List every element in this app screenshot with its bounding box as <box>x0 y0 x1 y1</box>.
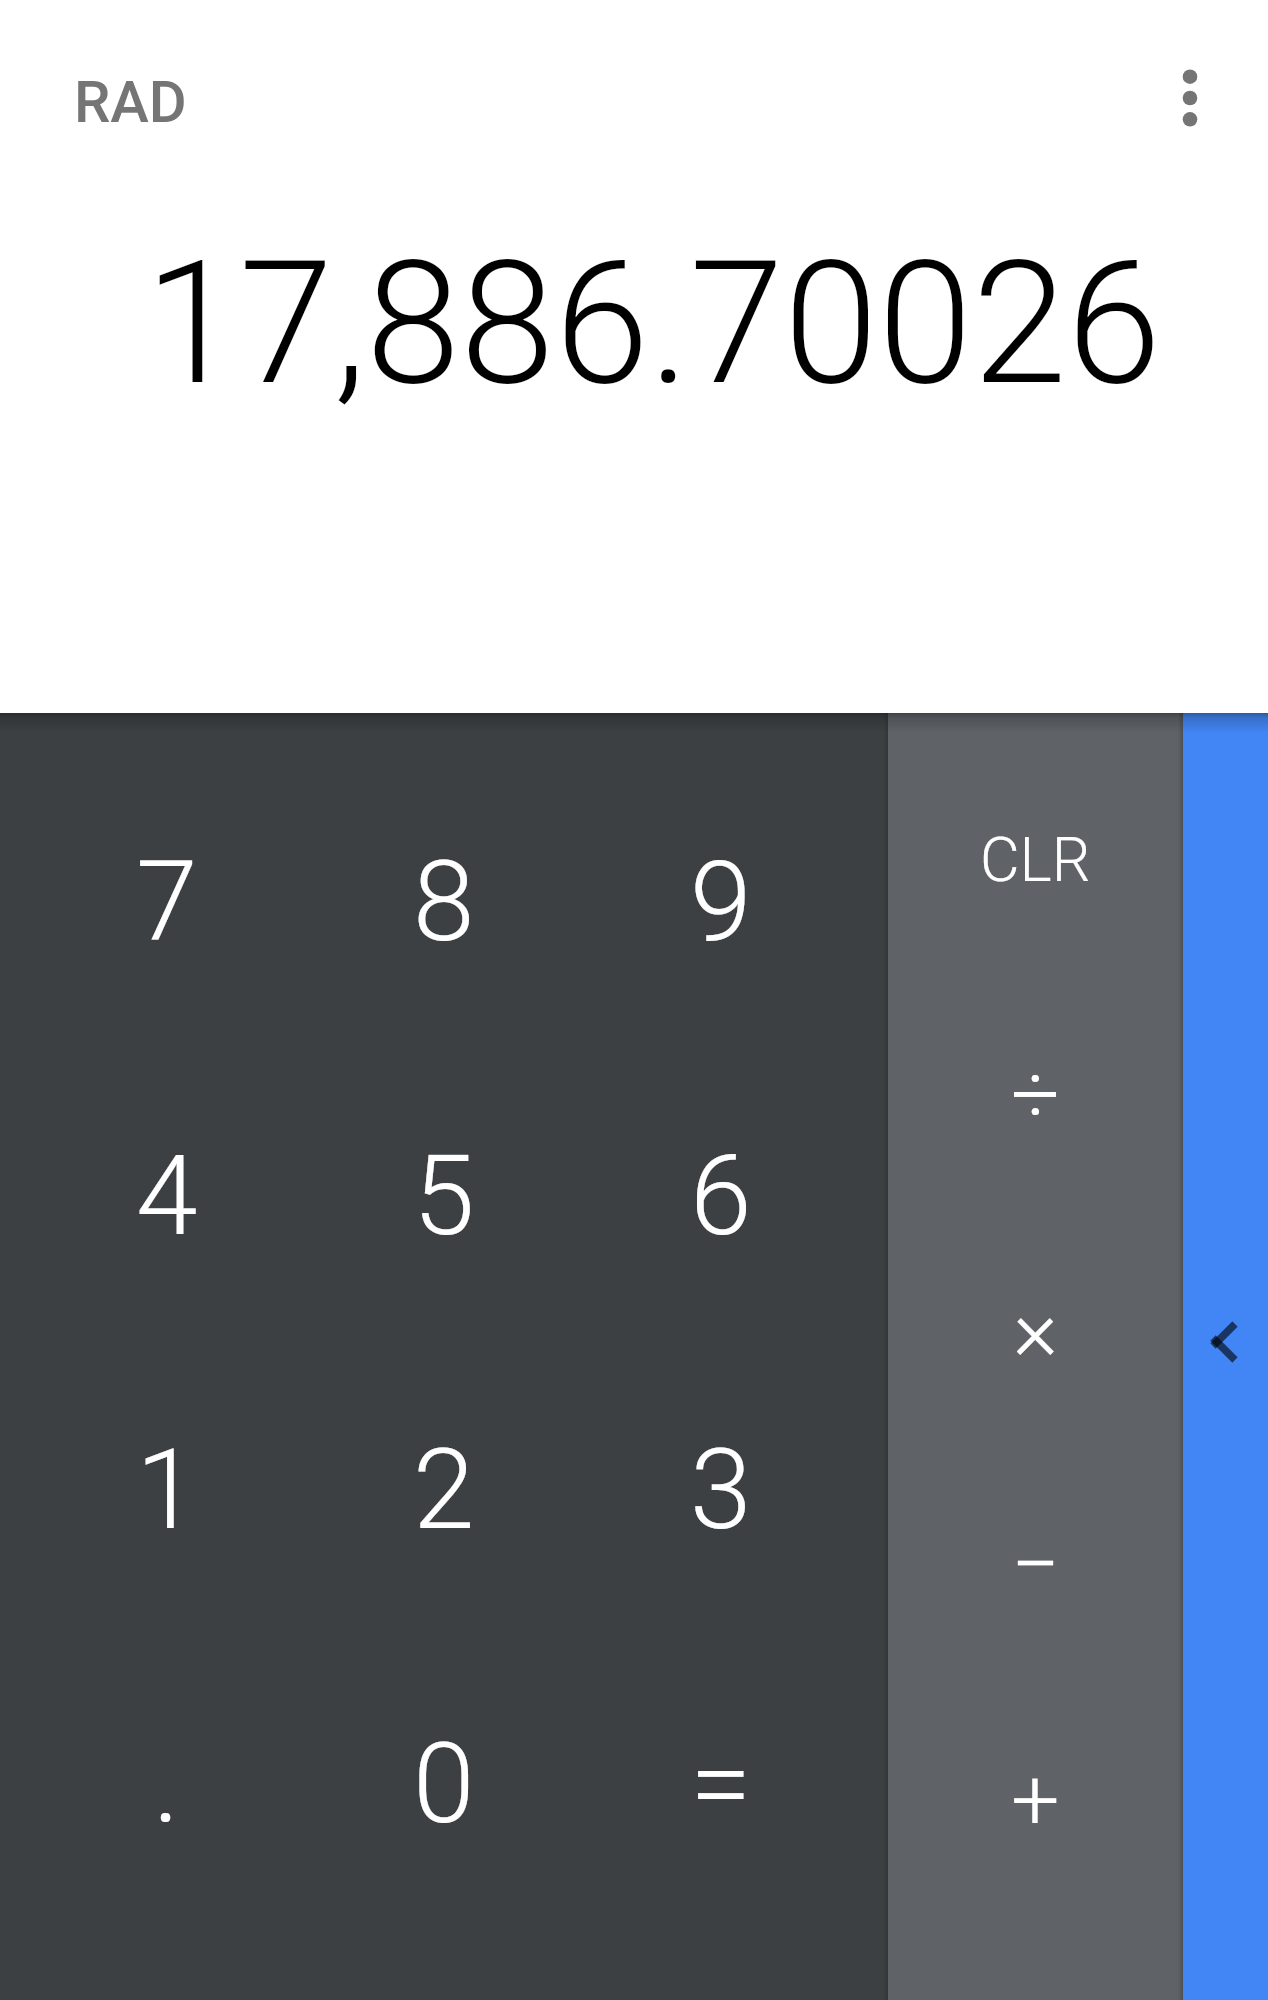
button[interactable]: 1 <box>28 1343 305 1637</box>
button[interactable]: + <box>888 1682 1183 1917</box>
staticText: 17,886.70026 <box>40 224 1161 423</box>
button[interactable]: ÷ <box>888 977 1183 1212</box>
staticText: − <box>1011 1514 1061 1615</box>
button[interactable]: = <box>582 1637 859 1931</box>
button[interactable]: 2 <box>305 1343 582 1637</box>
staticText: = <box>690 1719 752 1849</box>
staticText: 8 <box>413 837 475 967</box>
staticText: + <box>1011 1749 1060 1850</box>
staticText: 5 <box>413 1131 475 1261</box>
button[interactable]: 0 <box>305 1637 582 1931</box>
button[interactable]: × <box>888 1212 1183 1447</box>
staticText: ÷ <box>1011 1044 1060 1145</box>
staticText: RAD <box>74 68 187 136</box>
button[interactable]: CLR <box>888 742 1183 977</box>
staticText: CLR <box>980 824 1091 895</box>
button[interactable]: − <box>888 1447 1183 1682</box>
staticText: 7 <box>136 837 198 967</box>
staticText: × <box>1013 1279 1059 1380</box>
button[interactable]: 8 <box>305 755 582 1049</box>
button[interactable]: 6 <box>582 1049 859 1343</box>
staticText: 4 <box>136 1131 198 1261</box>
button[interactable]: 9 <box>582 755 859 1049</box>
button[interactable]: 7 <box>28 755 305 1049</box>
staticText: 3 <box>690 1425 752 1555</box>
staticText: . <box>153 1719 180 1849</box>
button[interactable]: 3 <box>582 1343 859 1637</box>
staticText: 9 <box>690 837 752 967</box>
staticText: 0 <box>413 1719 475 1849</box>
button[interactable]: 4 <box>28 1049 305 1343</box>
button[interactable]: RAD <box>52 52 209 152</box>
staticText: 6 <box>690 1131 752 1261</box>
button[interactable]: More options <box>1130 38 1250 158</box>
button[interactable]: Open advanced pad <box>1183 713 1268 2000</box>
button[interactable]: . <box>28 1637 305 1931</box>
staticText: 1 <box>136 1425 198 1555</box>
staticText: 2 <box>413 1425 475 1555</box>
button[interactable]: 5 <box>305 1049 582 1343</box>
